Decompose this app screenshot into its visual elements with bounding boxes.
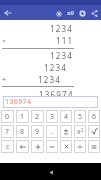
button[interactable]: eq: [88, 140, 100, 153]
button[interactable]: 1: [16, 110, 29, 123]
staticText: 7: [5, 127, 10, 137]
staticText: 8: [20, 127, 25, 137]
button[interactable]: c: [1, 140, 14, 153]
staticText: 4: [64, 112, 69, 122]
button[interactable]: 4: [60, 110, 72, 123]
button[interactable]: div: [74, 140, 86, 153]
button[interactable]: 6: [88, 110, 100, 123]
staticText: 6: [92, 112, 97, 122]
button[interactable]: plus: [31, 140, 44, 153]
button[interactable]: x2: [74, 125, 86, 138]
staticText: 1234: [50, 50, 74, 61]
staticText: .: [51, 127, 53, 137]
staticText: 136974: [39, 89, 74, 96]
button[interactable]: .: [46, 125, 58, 138]
staticText: 111: [56, 35, 74, 46]
button[interactable]: 136974: [3, 96, 98, 108]
button[interactable]: sqrt: [88, 125, 100, 138]
button[interactable]: ±: [60, 125, 72, 138]
button[interactable]: back: [16, 140, 29, 153]
staticText: +: [2, 75, 7, 85]
button[interactable]: Back: [0, 5, 15, 20]
button[interactable]: minus: [46, 140, 58, 153]
button[interactable]: 7: [1, 125, 14, 138]
button[interactable]: 9: [31, 125, 44, 138]
button[interactable]: 5: [74, 110, 86, 123]
button[interactable]: 2: [31, 110, 44, 123]
button[interactable]: Settings: [76, 7, 88, 19]
button[interactable]: Multiplier: [64, 7, 76, 19]
staticText: 136974: [5, 97, 32, 107]
staticText: 0: [5, 112, 10, 122]
staticText: 1234: [38, 74, 62, 85]
staticText: c: [6, 142, 10, 152]
button[interactable]: 3: [46, 110, 58, 123]
staticText: 3: [50, 112, 55, 122]
button[interactable]: Back: [43, 164, 59, 180]
staticText: 1234: [50, 23, 74, 34]
staticText: 1234: [44, 62, 68, 73]
button[interactable]: Share: [88, 7, 100, 19]
staticText: 2: [35, 112, 40, 122]
staticText: ×: [2, 37, 6, 45]
button[interactable]: 0: [1, 110, 14, 123]
staticText: 9: [35, 127, 40, 137]
button[interactable]: times: [60, 140, 72, 153]
staticText: x: [77, 127, 81, 137]
staticText: x0: [67, 9, 74, 17]
staticText: 5: [78, 112, 83, 122]
button[interactable]: Asterisk: [53, 8, 64, 19]
staticText: 1: [20, 112, 25, 122]
button[interactable]: 8: [16, 125, 29, 138]
staticText: 2: [81, 127, 84, 133]
